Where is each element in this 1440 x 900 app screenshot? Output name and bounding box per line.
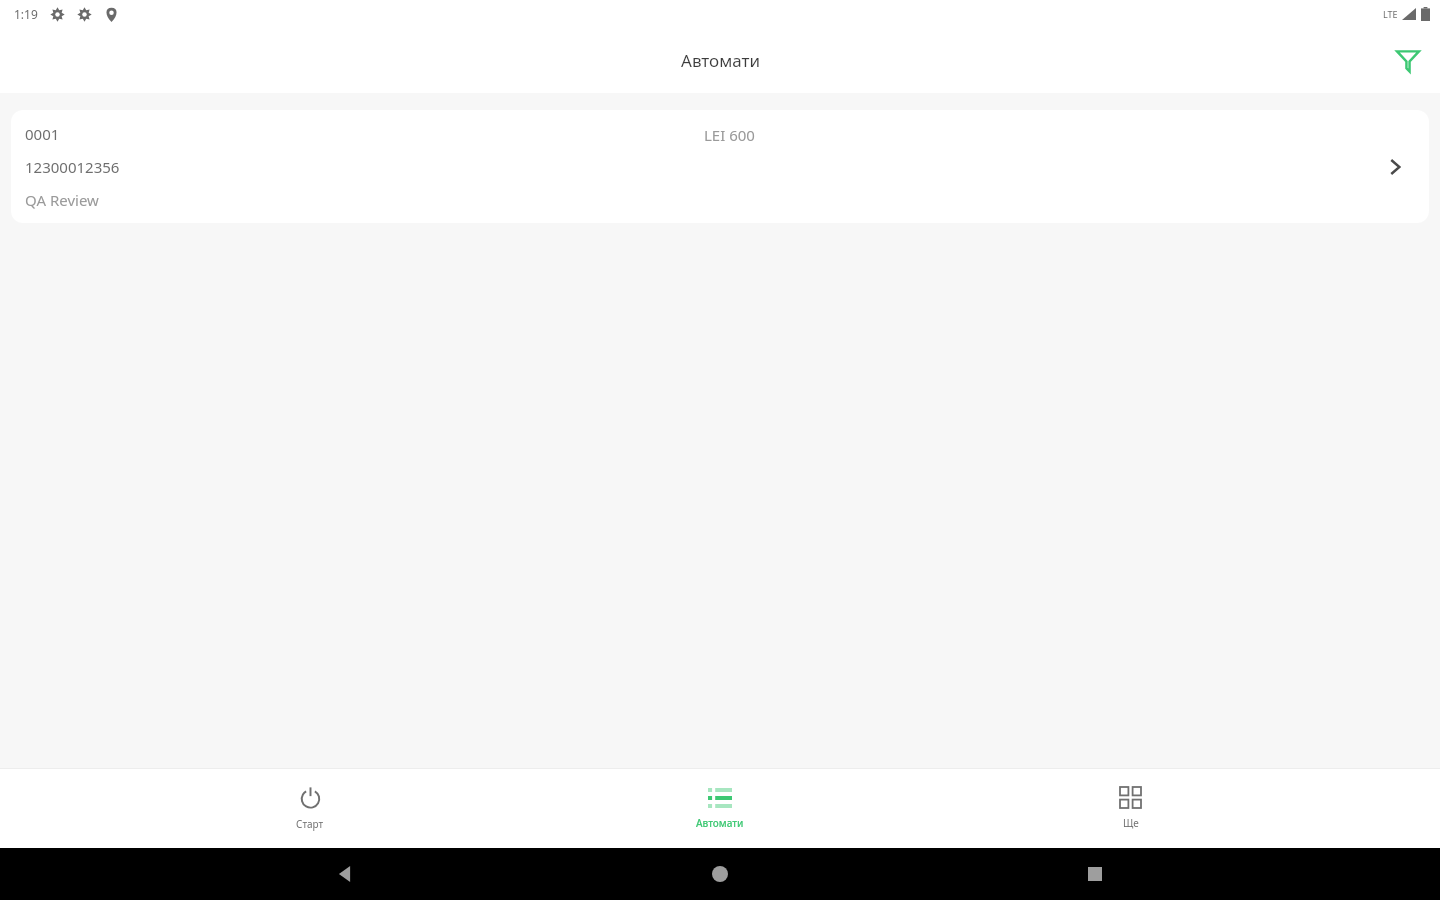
- button[interactable]: Фільтр: [1384, 37, 1432, 85]
- staticText: QA Review: [25, 190, 99, 210]
- button[interactable]: Home: [690, 848, 750, 900]
- staticText: LTE: [1383, 8, 1398, 20]
- staticText: 12300012356: [25, 157, 120, 177]
- button[interactable]: Автомати: [620, 769, 820, 848]
- staticText: Старт: [296, 817, 324, 831]
- button[interactable]: 0001: [11, 110, 1429, 223]
- staticText: Автомати: [696, 816, 744, 830]
- button[interactable]: Recents: [1065, 848, 1125, 900]
- staticText: 1:19: [14, 6, 38, 22]
- button[interactable]: Ще: [1030, 769, 1230, 848]
- staticText: 0001: [25, 124, 60, 144]
- staticText: Автомати: [681, 49, 760, 72]
- button[interactable]: Старт: [210, 769, 410, 848]
- staticText: LEI 600: [704, 125, 755, 145]
- button[interactable]: Back: [315, 848, 375, 900]
- staticText: Ще: [1123, 816, 1139, 830]
